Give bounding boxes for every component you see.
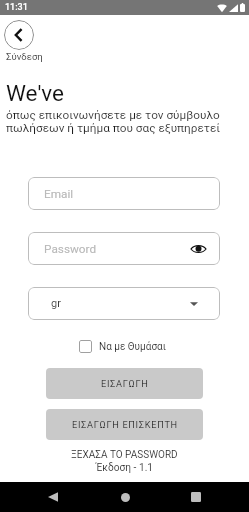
staticText: Password: [44, 242, 97, 256]
staticText: ΕΙΣΑΓΩΓΗ: [101, 378, 149, 389]
staticText: ΕΙΣΑΓΩΓΗ ΕΠΙΣΚΕΠΤΗ: [72, 419, 178, 430]
button[interactable]: Back: [41, 485, 65, 509]
button[interactable]: Back: [4, 20, 34, 50]
button[interactable]: Recent apps: [184, 485, 208, 509]
button[interactable]: ΕΙΣΑΓΩΓΗ: [46, 368, 203, 399]
button[interactable]: Email: [28, 177, 220, 210]
staticText: Σύνδεση: [6, 51, 43, 62]
staticText: We've: [6, 80, 65, 106]
button[interactable]: gr: [28, 287, 220, 320]
button[interactable]: ΞΕΧΑΣΑ ΤΟ PASSWORD: [0, 449, 249, 461]
staticText: 11:31: [5, 2, 28, 13]
button[interactable]: Password: [28, 232, 220, 265]
staticText: gr: [51, 297, 61, 310]
staticText: ΞΕΧΑΣΑ ΤΟ PASSWORD: [71, 449, 178, 461]
button[interactable]: ΕΙΣΑΓΩΓΗ ΕΠΙΣΚΕΠΤΗ: [46, 409, 203, 440]
other: Show password: [191, 244, 206, 254]
button[interactable]: Να με Θυμάσαι: [79, 340, 166, 353]
staticText: Να με Θυμάσαι: [99, 341, 166, 353]
staticText: Έκδοση - 1.1: [96, 462, 154, 474]
button[interactable]: Home: [113, 485, 137, 509]
staticText: Email: [44, 187, 74, 201]
staticText: όπως επικοινωνήσετε με τον σύμβουλο πωλή…: [6, 108, 221, 135]
